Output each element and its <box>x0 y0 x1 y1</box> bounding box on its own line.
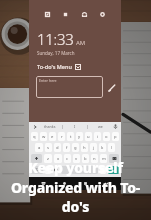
staticText: Keep yourself <box>28 158 123 177</box>
button[interactable]: x <box>54 154 62 163</box>
button[interactable]: Space <box>61 166 98 174</box>
button[interactable]: thanks <box>38 122 62 131</box>
staticText: d <box>56 145 59 151</box>
button[interactable]: Enter <box>108 166 119 174</box>
button[interactable]: More <box>31 123 38 130</box>
staticText: ?123 <box>34 168 41 172</box>
button[interactable]: w <box>40 132 47 141</box>
staticText: 11:33 <box>37 29 74 49</box>
staticText: n <box>93 156 96 162</box>
staticText: Organized with To-do's <box>0 178 151 216</box>
button[interactable]: u <box>85 132 92 141</box>
button[interactable]: o <box>103 132 110 141</box>
button[interactable]: ?123 <box>31 166 43 174</box>
button[interactable]: Backspace <box>109 154 119 163</box>
button[interactable]: b <box>82 154 89 163</box>
button[interactable]: Keyboard switch <box>37 177 50 190</box>
button[interactable]: n <box>91 154 98 163</box>
button[interactable]: we <box>88 122 112 131</box>
staticText: c <box>66 156 69 162</box>
staticText: m <box>102 156 106 162</box>
button[interactable]: a <box>35 143 43 152</box>
button[interactable]: z <box>44 154 52 163</box>
button[interactable]: . <box>100 166 106 174</box>
staticText: k <box>101 145 104 151</box>
staticText: f <box>66 145 68 151</box>
staticText: y <box>78 134 81 140</box>
button[interactable]: h <box>81 143 88 152</box>
button[interactable]: g <box>72 143 79 152</box>
staticText: o <box>105 134 108 140</box>
button[interactable]: Notifications <box>78 8 91 21</box>
staticText: i <box>97 134 99 140</box>
staticText: z <box>47 156 49 162</box>
button[interactable]: k <box>99 143 106 152</box>
staticText: b <box>84 156 87 162</box>
other: Expand menu <box>75 64 81 70</box>
staticText: To-do's Menu <box>37 63 72 70</box>
staticText: s <box>47 145 50 151</box>
button[interactable]: d <box>54 143 61 152</box>
button[interactable]: l <box>108 143 115 152</box>
button[interactable]: Settings <box>96 8 109 21</box>
staticText: Enter here <box>39 78 57 83</box>
button[interactable]: Back <box>58 177 71 190</box>
button[interactable]: To-do's Menu <box>37 63 81 70</box>
button[interactable]: r <box>58 132 65 141</box>
staticText: Sunday, 17 March <box>37 50 75 56</box>
staticText: h <box>83 145 86 151</box>
button[interactable]: t <box>67 132 74 141</box>
button[interactable]: m <box>100 154 107 163</box>
button[interactable]: e <box>49 132 56 141</box>
button[interactable]: Edit <box>106 82 117 93</box>
staticText: q <box>33 134 36 140</box>
button[interactable]: j <box>90 143 97 152</box>
button[interactable]: , <box>45 166 51 174</box>
staticText: g <box>74 145 77 151</box>
staticText: u <box>87 134 90 140</box>
button[interactable]: Shift <box>31 154 42 163</box>
button[interactable]: Home <box>79 177 92 190</box>
staticText: thanks <box>44 124 56 129</box>
button[interactable]: c <box>64 154 71 163</box>
button[interactable]: q <box>31 132 38 141</box>
button[interactable]: I <box>63 122 87 131</box>
staticText: p <box>114 134 117 140</box>
staticText: x <box>57 156 60 162</box>
staticText: AM <box>76 39 86 47</box>
staticText: I <box>74 124 76 129</box>
button[interactable]: Voice input <box>112 123 119 130</box>
staticText: we <box>98 124 103 129</box>
button[interactable]: p <box>112 132 119 141</box>
staticText: e <box>51 134 54 140</box>
button[interactable]: Recents <box>100 177 113 190</box>
staticText: t <box>70 134 72 140</box>
button[interactable]: Sync <box>41 8 54 21</box>
button[interactable]: i <box>94 132 101 141</box>
button[interactable]: Enter here <box>36 76 103 98</box>
button[interactable]: v <box>73 154 80 163</box>
staticText: a <box>38 145 41 151</box>
button[interactable]: Archive <box>59 8 72 21</box>
button[interactable]: y <box>76 132 83 141</box>
staticText: w <box>42 134 46 140</box>
staticText: r <box>61 134 63 140</box>
button[interactable]: Emoji <box>53 166 59 174</box>
staticText: v <box>75 156 78 162</box>
button[interactable]: f <box>63 143 70 152</box>
button[interactable]: s <box>45 143 52 152</box>
staticText: j <box>93 145 95 151</box>
staticText: l <box>111 145 113 151</box>
